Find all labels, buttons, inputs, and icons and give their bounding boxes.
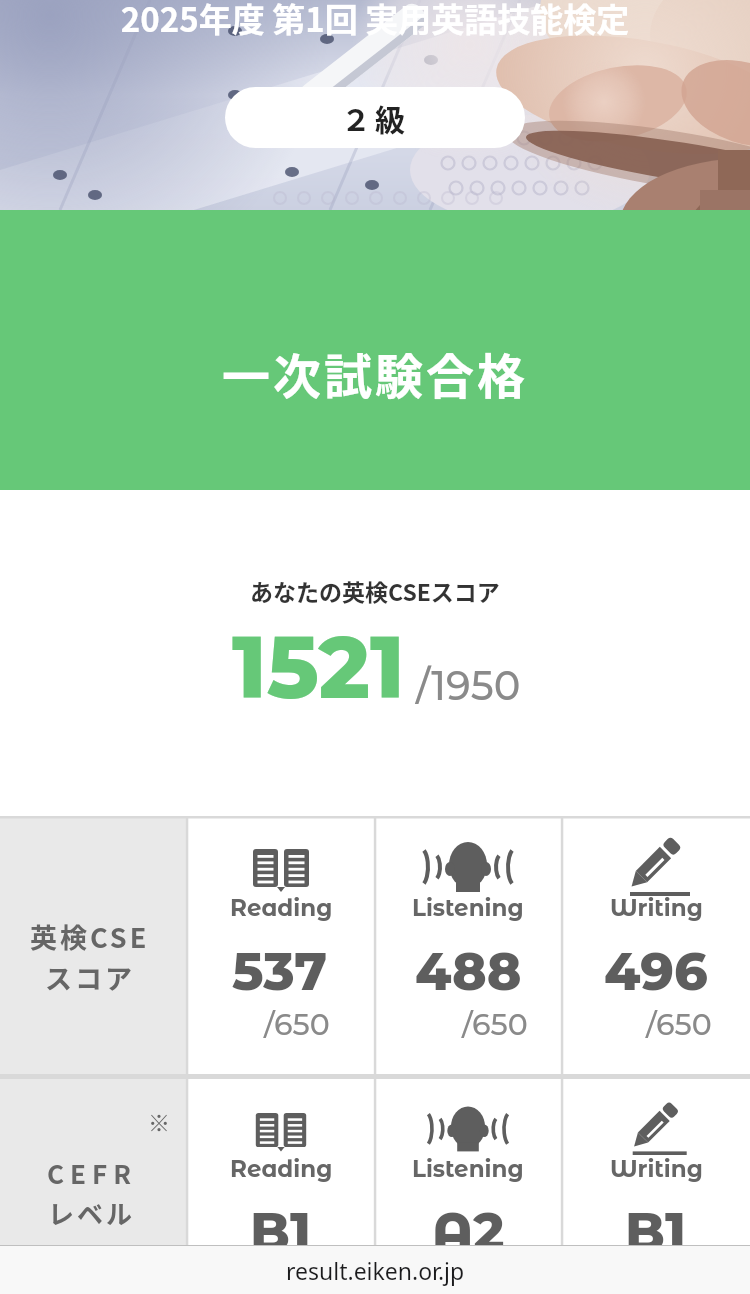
staticText: 537 bbox=[232, 940, 328, 1003]
staticText: 496 bbox=[604, 940, 708, 1003]
staticText: 1521 bbox=[232, 615, 405, 720]
staticText: Writing bbox=[610, 894, 703, 922]
staticText: /650 bbox=[264, 1006, 330, 1043]
staticText: CEFR bbox=[47, 1154, 137, 1192]
staticText: /650 bbox=[462, 1006, 528, 1043]
button[interactable]: result.eiken.or.jp bbox=[0, 1246, 750, 1294]
staticText: B1 bbox=[625, 1200, 687, 1263]
staticText: ２級 bbox=[341, 96, 409, 139]
staticText: 英検CSE bbox=[30, 917, 150, 956]
staticText: 2025年度 第1回 実用英語技能検定 bbox=[0, 0, 750, 42]
staticText: /1950 bbox=[416, 661, 521, 710]
staticText: Listening bbox=[412, 1155, 524, 1183]
staticText: /650 bbox=[646, 1006, 712, 1043]
button[interactable]: ２級 bbox=[225, 87, 525, 148]
staticText: レベル bbox=[48, 1194, 136, 1232]
staticText: A2 bbox=[432, 1200, 505, 1263]
staticText: result.eiken.or.jp bbox=[286, 1255, 465, 1286]
staticText: Reading bbox=[230, 894, 333, 922]
staticText: 488 bbox=[415, 940, 522, 1003]
staticText: B1 bbox=[250, 1200, 312, 1263]
staticText: Reading bbox=[230, 1155, 333, 1183]
staticText: あなたの英検CSEスコア bbox=[250, 574, 500, 607]
staticText: ※ bbox=[148, 1105, 171, 1137]
staticText: 一次試験合格 bbox=[222, 338, 529, 408]
staticText: Writing bbox=[610, 1155, 703, 1183]
staticText: スコア bbox=[45, 958, 135, 997]
staticText: Listening bbox=[412, 894, 524, 922]
